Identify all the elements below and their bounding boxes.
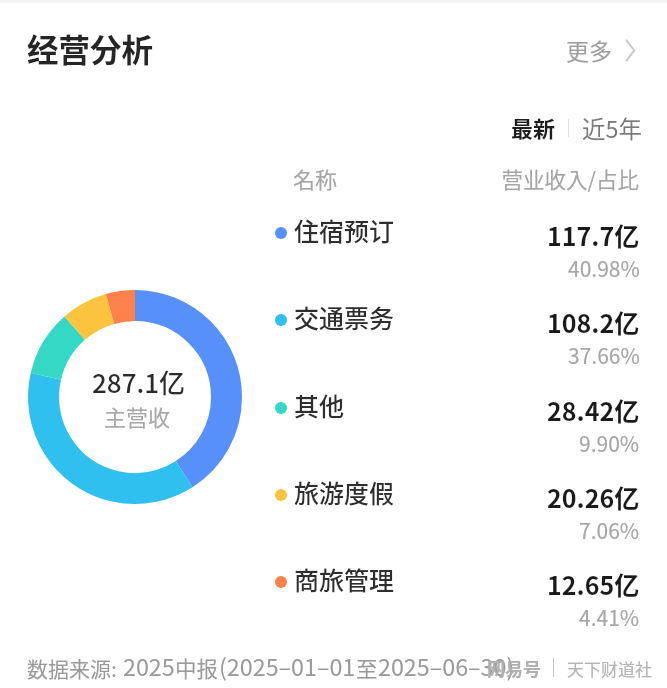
staticText: 7.06% — [579, 515, 640, 545]
staticText: 117.7亿 — [547, 217, 640, 253]
staticText: 天下财道社 — [567, 656, 652, 681]
button[interactable]: 商旅管理 — [0, 561, 667, 633]
staticText: 28.42亿 — [547, 392, 640, 428]
staticText: (2025–01–01 — [219, 649, 356, 683]
staticText: 4.41% — [579, 602, 640, 632]
staticText: 2025 — [123, 649, 175, 683]
staticText: 近5年 — [582, 111, 643, 145]
staticText: 主营收 — [104, 400, 171, 432]
button[interactable]: 其他 — [0, 387, 667, 459]
staticText: 37.66% — [568, 340, 640, 370]
staticText: 更多 — [566, 33, 612, 66]
staticText: 287.1亿 — [92, 363, 186, 401]
button[interactable]: 最新 — [505, 105, 562, 149]
staticText: 12.65亿 — [547, 566, 640, 602]
staticText: 交通票务 — [294, 299, 395, 335]
staticText: 商旅管理 — [294, 561, 395, 597]
staticText: 中报 — [175, 652, 219, 683]
button[interactable]: 旅游度假 — [0, 474, 667, 546]
staticText: 至 — [356, 652, 378, 683]
staticText: 数据来源: — [27, 653, 117, 683]
button[interactable]: 近5年 — [576, 105, 649, 151]
button[interactable]: 更多 — [559, 28, 642, 71]
staticText: 网易号 — [487, 655, 541, 681]
staticText: 住宿预订 — [294, 212, 395, 248]
staticText: 旅游度假 — [294, 474, 395, 510]
other: More — [625, 39, 635, 62]
staticText: 最新 — [511, 111, 556, 143]
button[interactable]: 交通票务 — [0, 299, 667, 371]
staticText: 其他 — [294, 387, 345, 423]
staticText: 2025–06–30) — [378, 649, 515, 683]
staticText: 40.98% — [568, 253, 640, 283]
staticText: 108.2亿 — [547, 304, 640, 340]
staticText: 营业收入/占比 — [400, 163, 639, 194]
staticText: 20.26亿 — [547, 479, 640, 515]
staticText: 名称 — [293, 162, 338, 194]
button[interactable]: 住宿预订 — [0, 212, 667, 284]
staticText: 经营分析 — [27, 25, 154, 71]
staticText: 9.90% — [579, 428, 640, 458]
